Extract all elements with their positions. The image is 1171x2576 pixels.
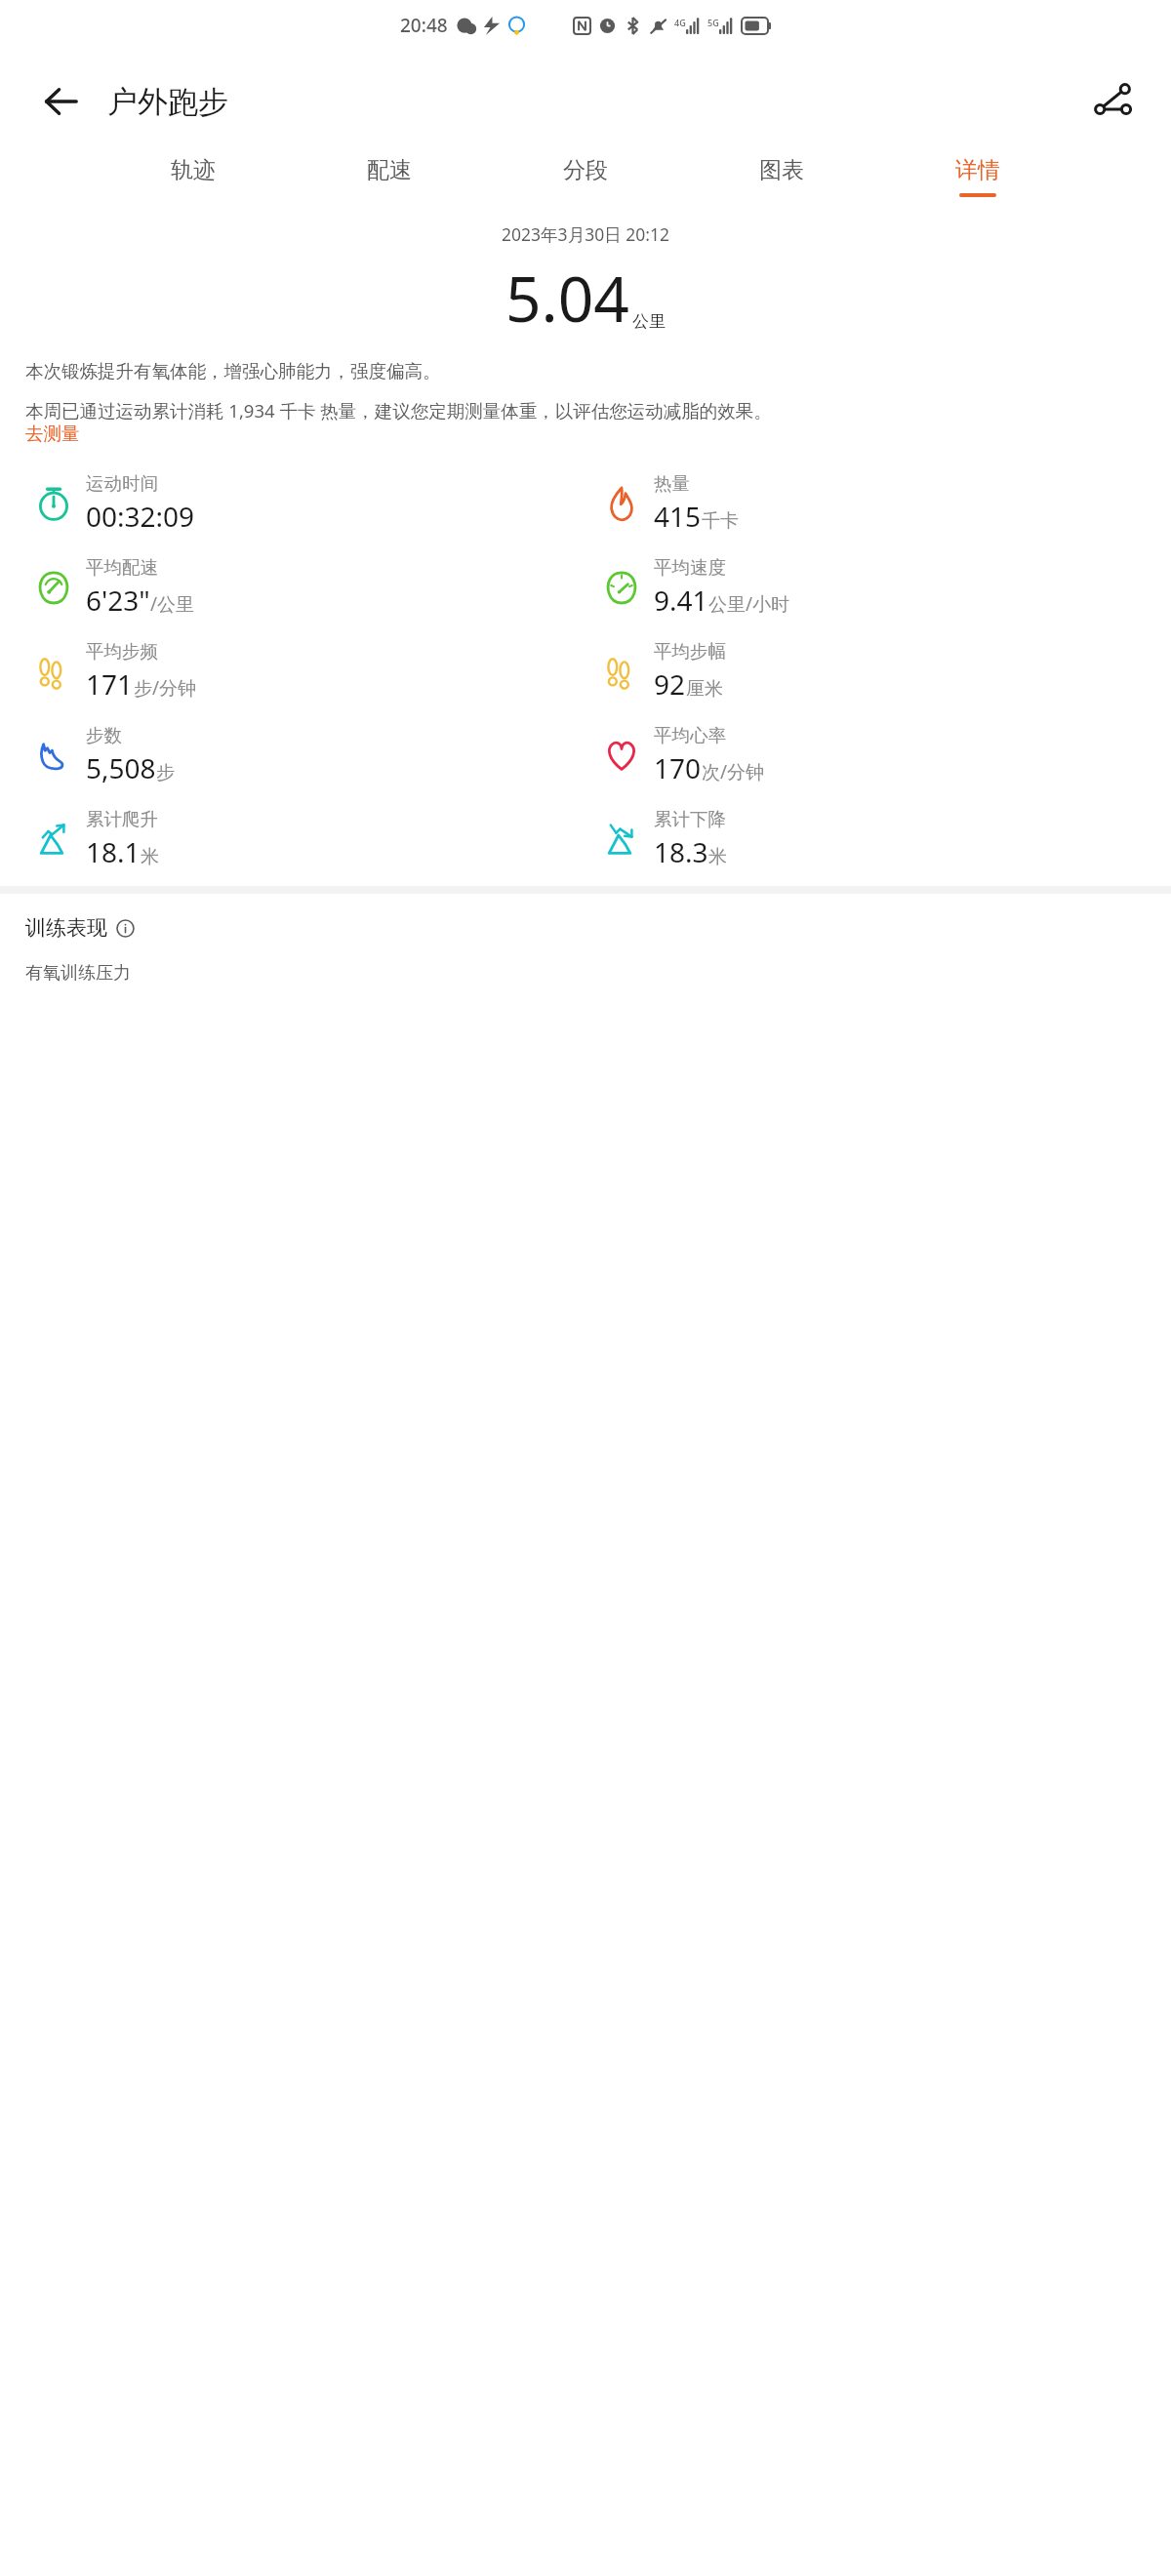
staticText: 去测量 (25, 423, 80, 445)
staticText: 9.41 (654, 582, 708, 619)
staticText: 图表 (759, 156, 804, 184)
button[interactable]: 热量 (589, 470, 1157, 537)
button[interactable]: 运动时间 (21, 470, 589, 537)
staticText: 本周已通过运动累计消耗 1,934 千卡 热量，建议您定期测量体重，以评估您运动… (25, 398, 772, 423)
staticText: 本次锻炼提升有氧体能，增强心肺能力，强度偏高。 (25, 360, 441, 382)
staticText: 次/分钟 (702, 759, 765, 785)
staticText: 5,508 (86, 749, 156, 786)
staticText: 6'23" (86, 582, 150, 619)
staticText: 步数 (86, 724, 122, 746)
staticText: 18.3 (654, 833, 708, 870)
staticText: 米 (141, 845, 159, 868)
button[interactable]: 平均速度 (589, 554, 1157, 621)
staticText: 厘米 (686, 677, 723, 701)
staticText: 步/分钟 (134, 675, 197, 701)
staticText: 170 (654, 749, 702, 786)
staticText: 平均步幅 (654, 640, 726, 663)
staticText: 平均速度 (654, 556, 726, 579)
button[interactable]: 平均步幅 (589, 638, 1157, 704)
staticText: 公里 (632, 311, 666, 332)
staticText: 平均心率 (654, 724, 726, 746)
staticText: 92 (654, 665, 686, 703)
staticText: 米 (708, 845, 727, 868)
staticText: 配速 (367, 156, 412, 184)
staticText: 详情 (955, 156, 1000, 184)
button[interactable]: 返回 (33, 74, 88, 129)
staticText: 累计爬升 (86, 808, 158, 830)
staticText: 5.04 (505, 256, 629, 341)
staticText: 4G (674, 17, 686, 28)
staticText: 热量 (654, 472, 690, 495)
button[interactable]: 分享 (1083, 72, 1142, 131)
staticText: 00:32:09 (86, 498, 195, 535)
staticText: 平均步频 (86, 640, 158, 663)
button[interactable]: 去测量 (25, 423, 80, 445)
staticText: 千卡 (702, 509, 739, 533)
button[interactable]: 步数 (21, 722, 589, 788)
staticText: 415 (654, 498, 702, 535)
button[interactable]: 信息 (115, 918, 135, 938)
staticText: 20:48 (400, 13, 448, 38)
staticText: 2023年3月30日 20:12 (0, 222, 1171, 246)
staticText: 轨迹 (171, 156, 216, 184)
staticText: 步 (156, 761, 175, 785)
staticText: 训练表现 (25, 915, 107, 941)
button[interactable]: 分段 (553, 152, 618, 201)
button[interactable]: 平均心率 (589, 722, 1157, 788)
staticText: 累计下降 (654, 808, 726, 830)
button[interactable]: 平均步频 (21, 638, 589, 704)
staticText: 171 (86, 665, 134, 703)
button[interactable]: 累计爬升 (21, 806, 589, 872)
button[interactable]: 图表 (749, 152, 814, 201)
staticText: 18.1 (86, 833, 141, 870)
staticText: 分段 (563, 156, 608, 184)
staticText: 户外跑步 (107, 83, 228, 121)
button[interactable]: 配速 (357, 152, 422, 201)
staticText: 5G (707, 17, 719, 28)
button[interactable]: 详情 (946, 152, 1010, 201)
staticText: 有氧训练压力 (25, 962, 131, 985)
staticText: /公里 (150, 591, 195, 617)
staticText: 公里/小时 (708, 591, 790, 617)
button[interactable]: 平均配速 (21, 554, 589, 621)
staticText: 运动时间 (86, 472, 158, 495)
button[interactable]: 累计下降 (589, 806, 1157, 872)
staticText: 平均配速 (86, 556, 158, 579)
button[interactable]: 轨迹 (161, 152, 225, 201)
